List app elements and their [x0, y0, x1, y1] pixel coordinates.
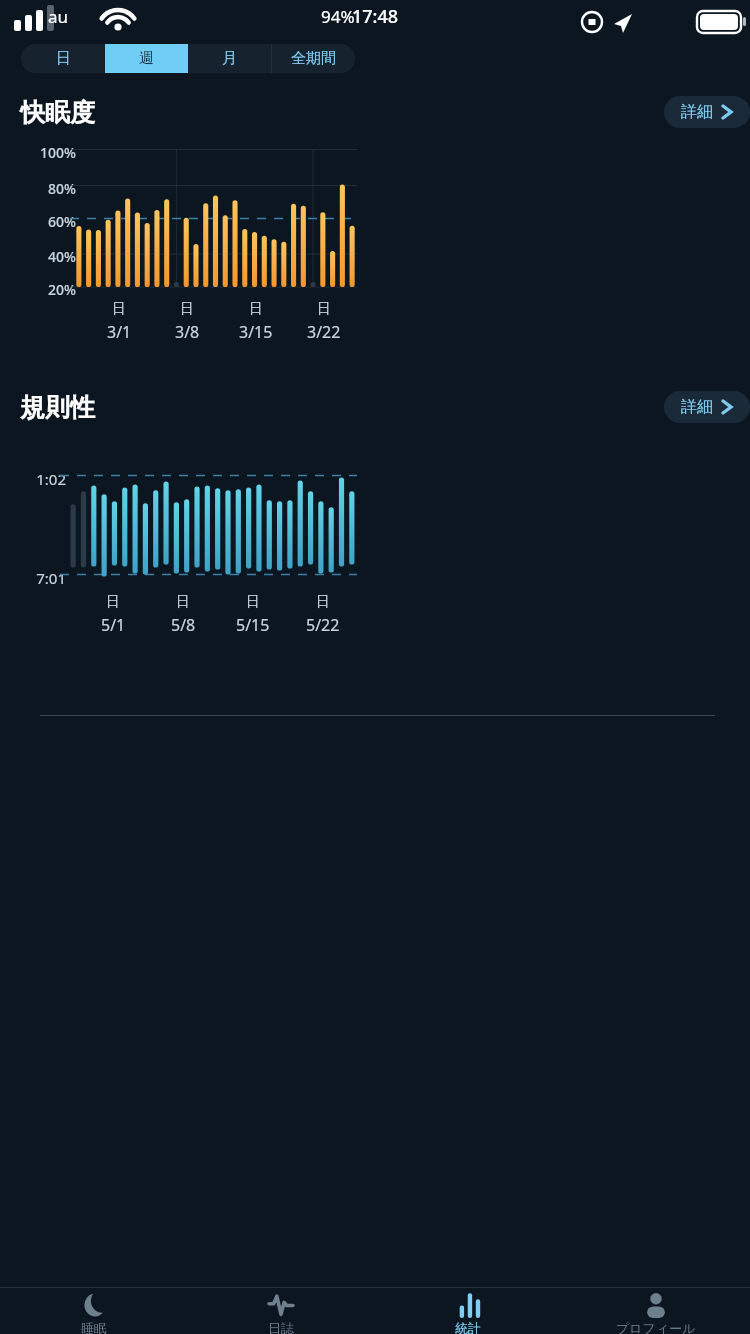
button[interactable]: 月 [188, 44, 271, 73]
staticText: au [48, 5, 69, 28]
staticText: 日 [112, 300, 126, 318]
staticText: 40% [20, 247, 76, 266]
other: 睡眠 [81, 1292, 107, 1318]
staticText: 日 [317, 300, 331, 318]
button[interactable]: プロフィール [562, 1288, 750, 1334]
other: プロフィール [643, 1292, 669, 1318]
staticText: 日 [176, 593, 190, 611]
staticText: 日 [249, 300, 263, 318]
staticText: 週 [139, 49, 154, 68]
button[interactable]: 詳細 [681, 102, 733, 122]
staticText: 日 [106, 593, 120, 611]
staticText: 月 [222, 49, 237, 68]
staticText: 詳細 [681, 397, 713, 417]
staticText: 5/22 [306, 614, 340, 636]
staticText: プロフィール [616, 1320, 696, 1334]
staticText: 20% [20, 280, 76, 299]
staticText: 94% [321, 5, 355, 28]
staticText: 80% [20, 179, 76, 198]
staticText: 日誌 [268, 1320, 294, 1334]
staticText: 5/8 [171, 614, 196, 636]
button[interactable]: 詳細 [681, 397, 733, 417]
staticText: 1:02 [20, 469, 66, 489]
staticText: 睡眠 [81, 1320, 107, 1334]
staticText: 詳細 [681, 102, 713, 122]
staticText: 17:48 [352, 4, 399, 29]
staticText: 100% [20, 143, 76, 162]
staticText: 7:01 [20, 568, 66, 588]
staticText: 日 [246, 593, 260, 611]
staticText: 5/15 [236, 614, 270, 636]
button[interactable]: 統計 [374, 1288, 562, 1334]
staticText: 3/8 [175, 321, 200, 343]
button[interactable]: 週 [105, 44, 188, 73]
staticText: 3/22 [307, 321, 341, 343]
button[interactable]: 睡眠 [0, 1288, 187, 1334]
staticText: 快眠度 [20, 97, 95, 128]
staticText: 統計 [455, 1320, 481, 1334]
button[interactable]: 日誌 [187, 1288, 374, 1334]
staticText: 3/15 [239, 321, 273, 343]
other: 日誌 [268, 1292, 294, 1318]
staticText: 全期間 [291, 49, 336, 68]
staticText: 60% [20, 212, 76, 231]
staticText: 5/1 [101, 614, 126, 636]
staticText: 日 [56, 49, 71, 68]
button[interactable]: 全期間 [272, 44, 355, 73]
button[interactable]: 日 [21, 44, 105, 73]
other: 統計 [455, 1292, 481, 1318]
staticText: 規則性 [20, 392, 95, 423]
staticText: 日 [316, 593, 330, 611]
staticText: 3/1 [107, 321, 132, 343]
staticText: 日 [180, 300, 194, 318]
